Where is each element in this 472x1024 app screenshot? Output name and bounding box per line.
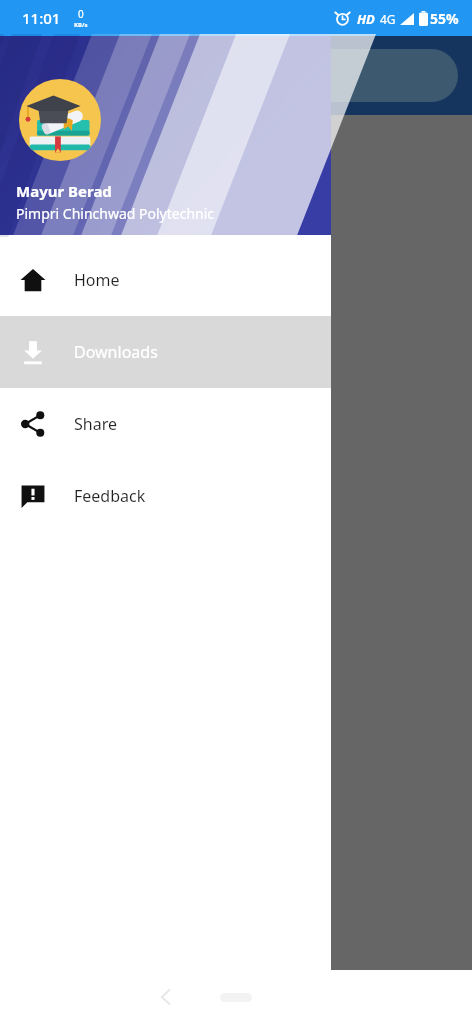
button[interactable]: Downloads (0, 316, 331, 388)
other: Home (20, 267, 46, 293)
staticText: 55% (430, 9, 459, 28)
staticText: Mayur Berad (16, 181, 112, 201)
staticText: Pimpri Chinchwad Polytechnic (16, 204, 215, 223)
staticText: KB/s (74, 21, 88, 29)
staticText: 0 (78, 7, 84, 21)
staticText: Home (74, 269, 120, 291)
staticText: Downloads (74, 341, 158, 363)
other: Downloads (20, 339, 46, 365)
button[interactable]: Feedback (0, 460, 331, 532)
button[interactable]: Home (0, 244, 331, 316)
other: Share (20, 411, 46, 437)
staticText: Share (74, 413, 117, 435)
other: Back (159, 990, 173, 1004)
staticText: SOLUTION (44, 61, 155, 91)
staticText: 11:01 (22, 8, 61, 28)
staticText: HD (357, 10, 375, 28)
other: Feedback (20, 483, 46, 509)
button[interactable]: Share (0, 388, 331, 460)
staticText: Feedback (74, 485, 146, 507)
staticText: 4G (380, 11, 396, 27)
button[interactable]: SOLUTION (24, 49, 458, 102)
